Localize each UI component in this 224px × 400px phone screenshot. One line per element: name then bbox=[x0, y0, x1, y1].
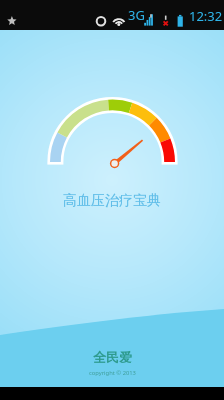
staticText: copyright © 2013 bbox=[89, 369, 136, 377]
staticText: 高血压治疗宝典 bbox=[63, 192, 161, 210]
staticText: 3G bbox=[128, 6, 145, 24]
staticText: 12:32 bbox=[189, 7, 223, 25]
staticText: 全民爱 bbox=[93, 349, 132, 365]
